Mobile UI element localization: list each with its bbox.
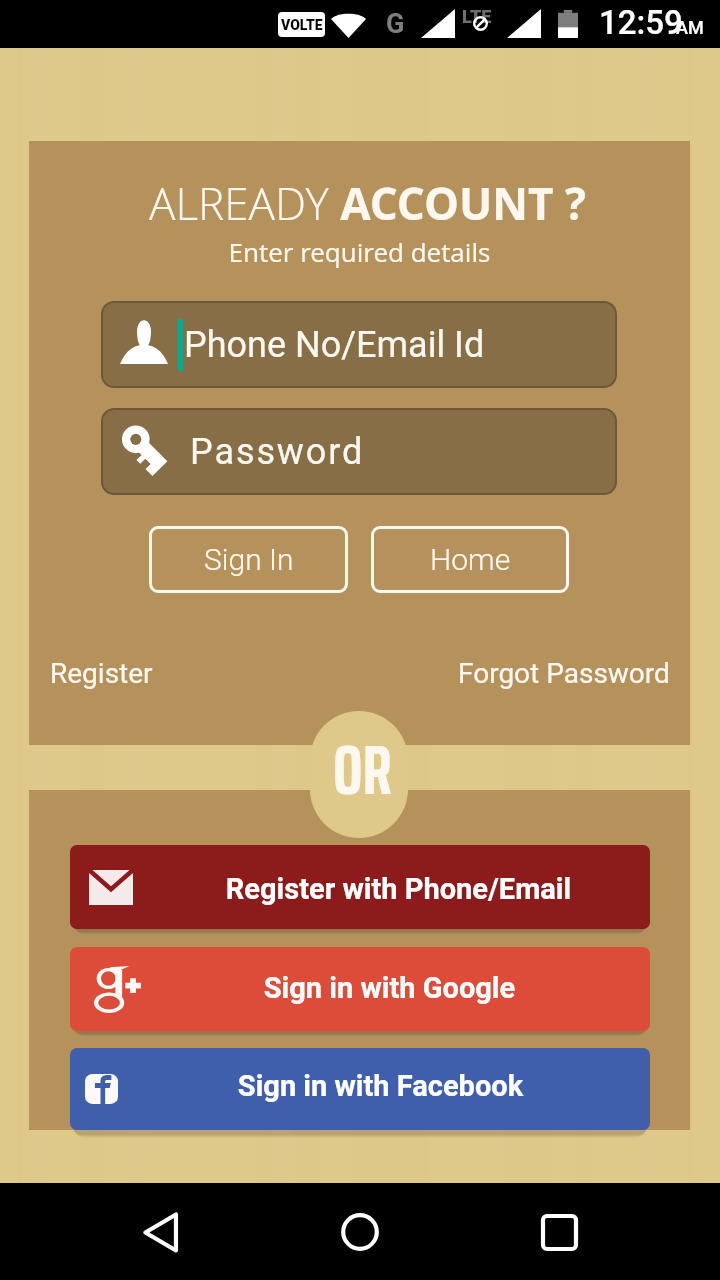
staticText: OR (333, 715, 392, 825)
staticText: Sign in with Facebook (111, 1069, 650, 1103)
staticText: Sign in with Google (129, 971, 650, 1005)
button[interactable]: Register with Phone/Email (70, 845, 650, 929)
staticText: Sign In (204, 542, 294, 577)
staticText: Register (50, 657, 153, 690)
button[interactable]: Home (371, 526, 569, 593)
button[interactable]: Recent apps (521, 1194, 597, 1270)
button[interactable]: Phone No/Email Id (101, 301, 617, 388)
button[interactable]: Register (50, 657, 153, 690)
staticText: G (386, 8, 405, 40)
staticText: Forgot Password (458, 657, 670, 690)
staticText: LTE (462, 6, 492, 27)
staticText: Enter required details (29, 234, 690, 269)
staticText: Home (430, 542, 511, 577)
button[interactable]: Sign In (149, 526, 348, 593)
staticText: Password (190, 431, 365, 473)
button[interactable]: Forgot Password (458, 657, 670, 690)
staticText: Phone No/Email Id (184, 324, 485, 366)
staticText: AM (676, 17, 704, 38)
button[interactable]: Home (322, 1194, 398, 1270)
staticText: VOLTE (281, 17, 323, 33)
staticText: 12:59 (599, 3, 683, 42)
staticText: ALREADY ACCOUNT ? (37, 173, 698, 233)
button[interactable]: Password (101, 408, 617, 495)
button[interactable]: Sign in with Facebook (70, 1048, 650, 1130)
button[interactable]: Sign in with Google (70, 947, 650, 1031)
button[interactable]: Back (123, 1194, 199, 1270)
staticText: Register with Phone/Email (147, 872, 650, 906)
